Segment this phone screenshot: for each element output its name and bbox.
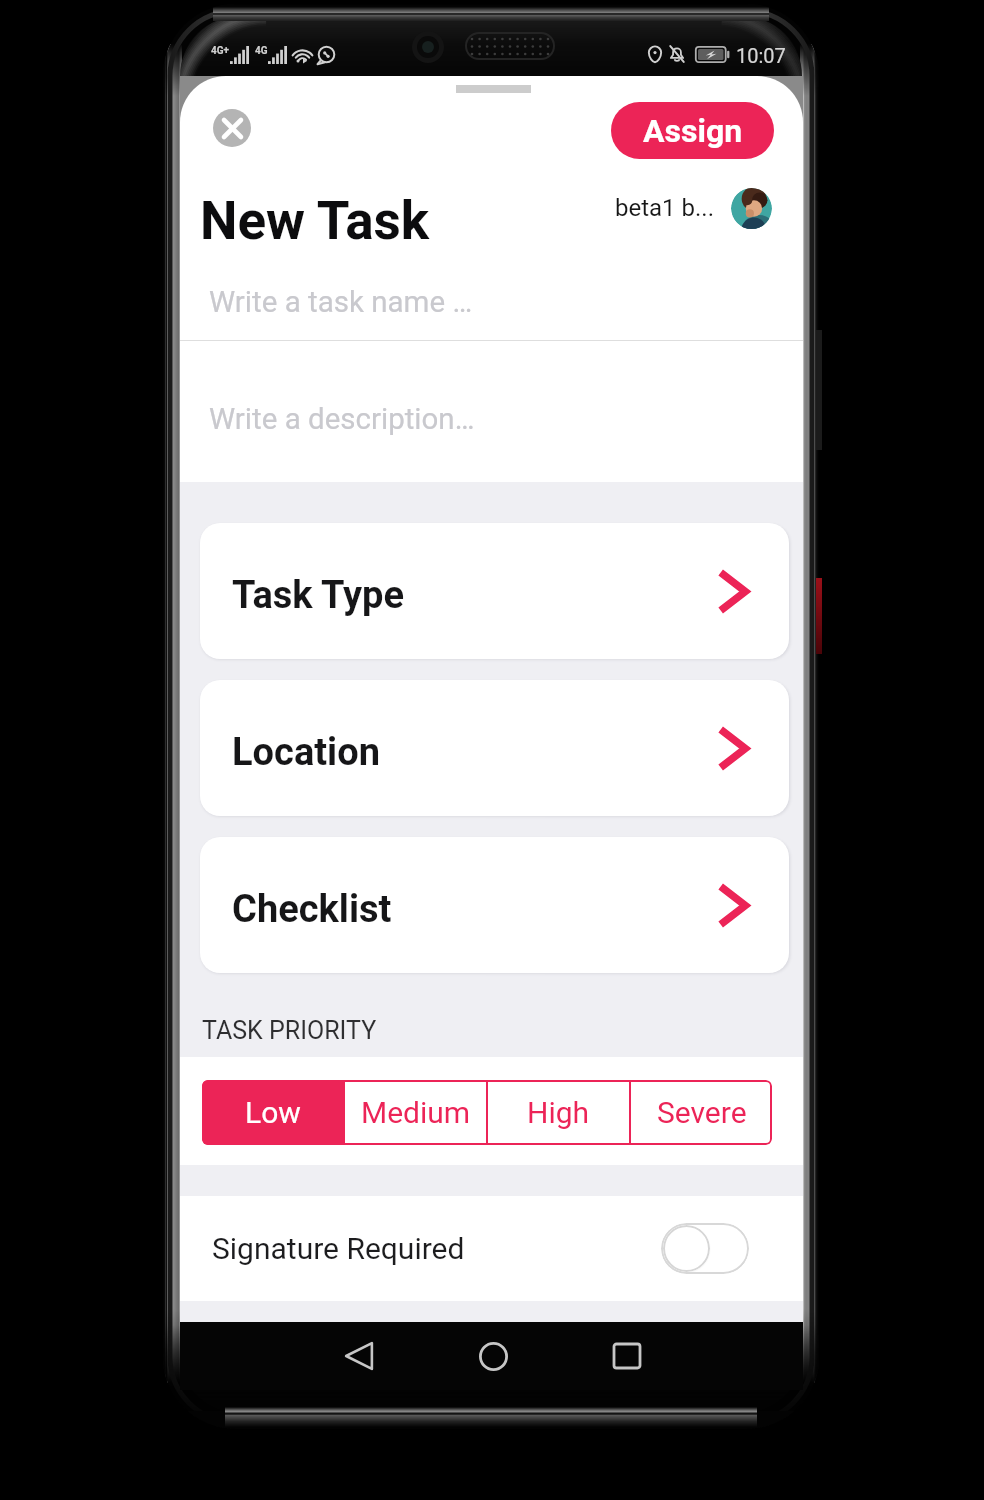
staticText: Location <box>232 730 380 775</box>
button[interactable]: Signature Required <box>180 1196 803 1301</box>
button[interactable]: beta1 b... <box>615 186 772 230</box>
button[interactable]: Low <box>202 1080 343 1145</box>
button[interactable]: Severe <box>631 1080 772 1145</box>
button[interactable]: Location <box>200 680 789 816</box>
staticText: Severe <box>657 1095 747 1130</box>
staticText: High <box>527 1095 590 1130</box>
staticText: 4G <box>255 45 268 57</box>
button[interactable]: High <box>488 1080 629 1145</box>
button[interactable]: Signature Required toggle <box>661 1223 749 1274</box>
button[interactable]: Back <box>331 1328 387 1384</box>
button[interactable]: Recents <box>599 1328 655 1384</box>
button[interactable]: Checklist <box>200 837 789 973</box>
button[interactable]: Home <box>465 1328 521 1384</box>
staticText: Signature Required <box>212 1231 465 1266</box>
staticText: beta1 b... <box>615 194 715 222</box>
staticText: New Task <box>200 190 430 252</box>
button[interactable]: Close <box>213 109 251 147</box>
button[interactable]: Medium <box>345 1080 486 1145</box>
staticText: Task Type <box>232 573 404 618</box>
staticText: TASK PRIORITY <box>202 1016 377 1045</box>
staticText: Checklist <box>232 887 392 932</box>
staticText: Assign <box>643 112 743 150</box>
button[interactable]: Write a task name … <box>180 270 803 340</box>
staticText: Medium <box>361 1095 471 1130</box>
button[interactable]: Assign <box>611 102 774 159</box>
staticText: Low <box>245 1095 301 1130</box>
staticText: Write a description… <box>209 402 475 437</box>
staticText: Write a task name … <box>209 285 473 320</box>
button[interactable]: Drag handle <box>440 79 547 101</box>
button[interactable]: Task Type <box>200 523 789 659</box>
button[interactable]: Write a description… <box>180 341 803 482</box>
staticText: 4G+ <box>211 45 230 57</box>
staticText: 10:07 <box>736 44 786 64</box>
